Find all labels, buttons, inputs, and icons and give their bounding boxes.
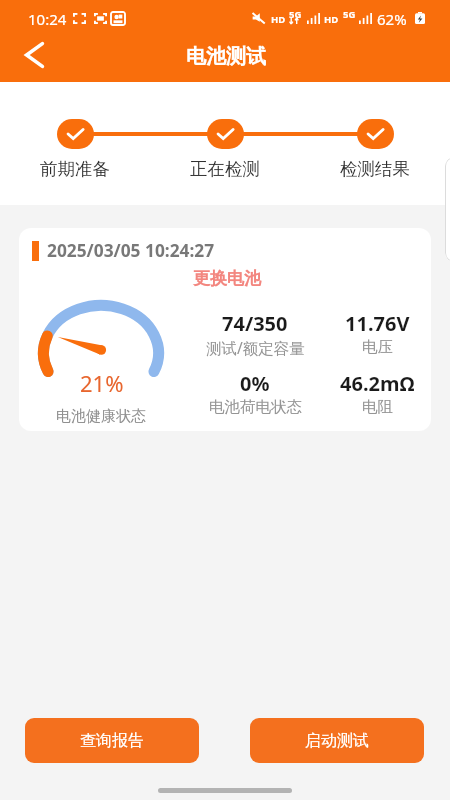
staticText: 电阻	[362, 397, 393, 417]
staticText: HD	[271, 13, 286, 26]
button[interactable]: 启动测试	[250, 718, 424, 763]
staticText: 检测结果	[340, 158, 410, 180]
button[interactable]: Back	[9, 30, 59, 80]
staticText: 5G	[343, 8, 356, 21]
staticText: 10:24	[28, 9, 67, 29]
staticText: 21%	[80, 368, 124, 398]
staticText: 电池荷电状态	[209, 397, 302, 417]
staticText: 62%	[377, 9, 407, 29]
staticText: 启动测试	[305, 731, 369, 751]
button[interactable]: Side panel	[445, 157, 450, 262]
staticText: 5G	[289, 8, 302, 21]
staticText: 前期准备	[40, 158, 110, 180]
staticText: 74/350	[222, 310, 288, 337]
staticText: 2025/03/05 10:24:27	[47, 239, 215, 263]
staticText: 电池测试	[186, 44, 266, 69]
staticText: 测试/额定容量	[206, 337, 305, 358]
staticText: 查询报告	[80, 731, 144, 751]
staticText: 正在检测	[190, 158, 260, 180]
staticText: 电压	[362, 337, 393, 357]
staticText: 46.2mΩ	[340, 370, 415, 397]
staticText: 0%	[240, 370, 270, 397]
staticText: HD	[324, 13, 339, 26]
staticText: 电池健康状态	[56, 407, 146, 426]
staticText: 11.76V	[345, 310, 410, 337]
button[interactable]: 查询报告	[25, 718, 199, 763]
staticText: 更换电池	[193, 268, 261, 289]
